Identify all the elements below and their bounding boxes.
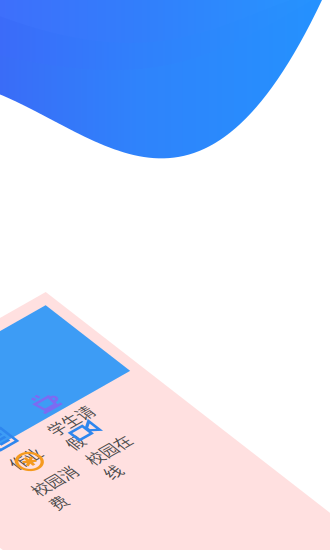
staticText: 校园消费 [123,303,207,384]
